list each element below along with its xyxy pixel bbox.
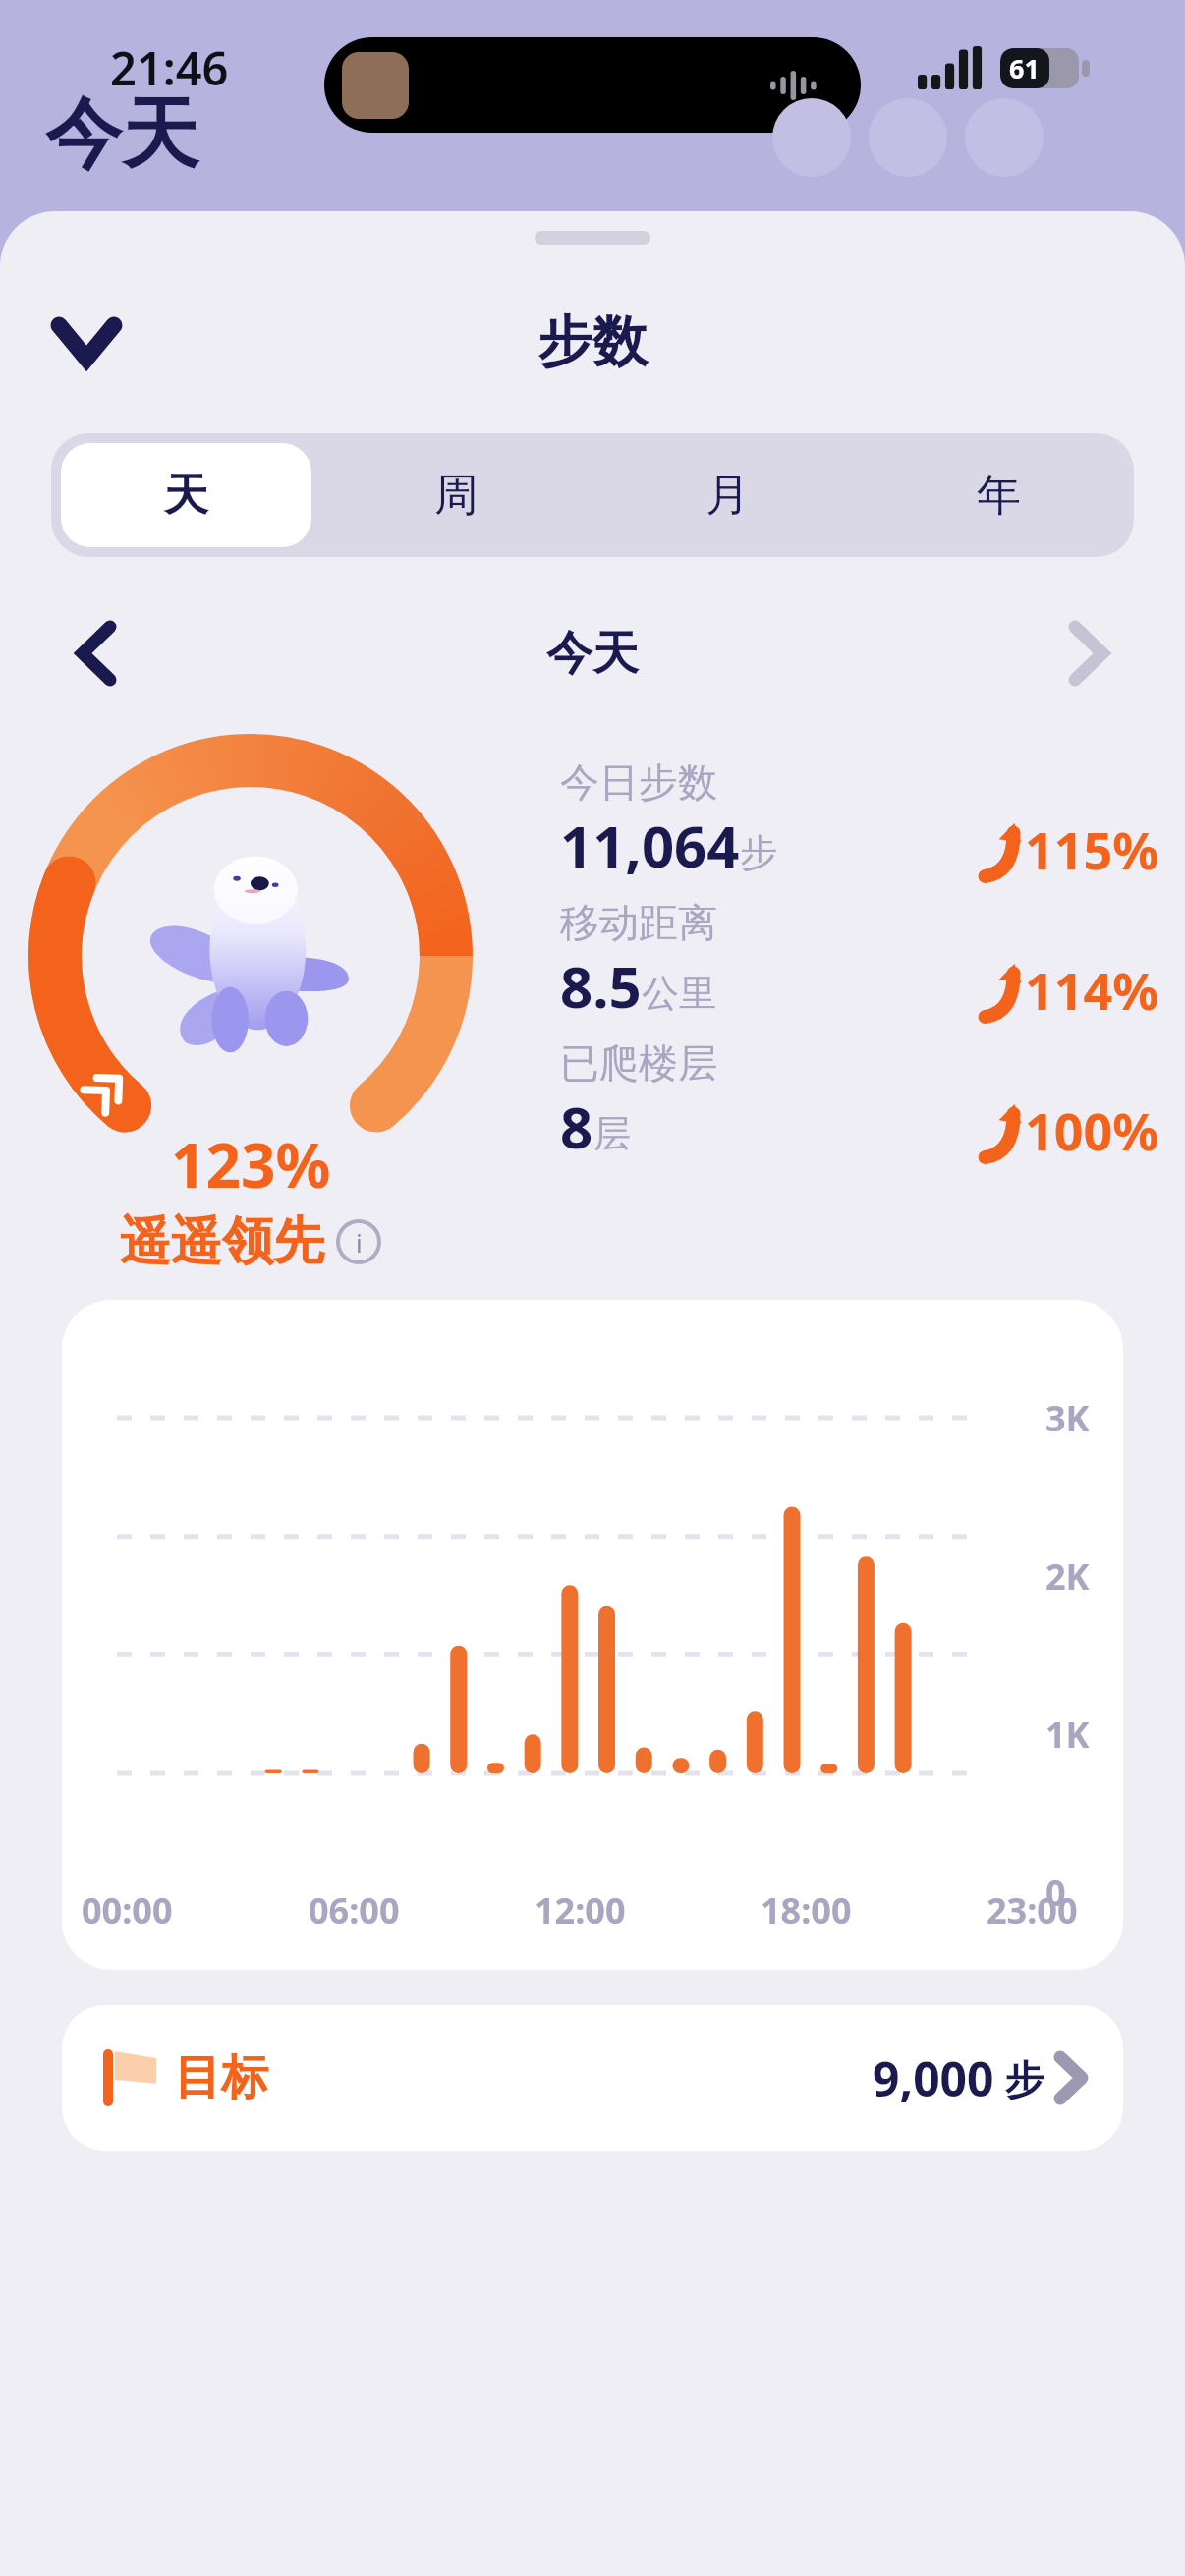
staticText: 23:00 — [987, 1886, 1078, 1934]
staticText: 今天 — [546, 625, 639, 683]
button[interactable]: Collapse — [35, 291, 138, 393]
button[interactable]: Info — [336, 1219, 381, 1264]
staticText: 11,064 — [560, 807, 740, 884]
button[interactable]: 天 — [61, 443, 311, 547]
staticText: 步 — [994, 2051, 1044, 2105]
button[interactable]: 周 — [331, 443, 582, 547]
staticText: 年 — [977, 468, 1021, 524]
button[interactable]: 目标 — [62, 2005, 1123, 2151]
staticText: 8.5 — [560, 947, 642, 1025]
staticText: 8 — [560, 1088, 593, 1165]
button[interactable]: 月 — [601, 443, 853, 547]
staticText: 18:00 — [761, 1886, 852, 1934]
staticText: 2K — [1045, 1552, 1090, 1600]
staticText: 天 — [164, 468, 208, 524]
staticText: 0 — [1045, 1869, 1066, 1917]
staticText: 100% — [1025, 1095, 1159, 1165]
staticText: 1K — [1045, 1710, 1090, 1759]
staticText: 12:00 — [535, 1886, 626, 1934]
staticText: 目标 — [174, 2048, 268, 2107]
staticText: 月 — [705, 468, 750, 524]
staticText: 周 — [434, 468, 479, 524]
button[interactable]: Previous day — [51, 608, 141, 699]
staticText: 步数 — [537, 308, 648, 377]
staticText: 公里 — [642, 970, 716, 1017]
staticText: 115% — [1025, 814, 1159, 884]
staticText: 9,000 — [873, 2046, 994, 2110]
staticText: 今日步数 — [560, 757, 717, 807]
staticText: 21:46 — [110, 36, 229, 99]
staticText: 3K — [1045, 1394, 1090, 1442]
button[interactable]: 3K — [62, 1300, 1123, 1970]
button[interactable]: Next day — [1044, 608, 1134, 699]
staticText: 已爬楼层 — [560, 1038, 717, 1088]
staticText: 步 — [740, 829, 777, 876]
staticText: 今天 — [45, 86, 198, 183]
staticText: 层 — [593, 1110, 631, 1157]
staticText: 114% — [1025, 955, 1159, 1025]
staticText: 00:00 — [82, 1886, 173, 1934]
staticText: 遥遥领先 — [120, 1209, 324, 1274]
staticText: 06:00 — [309, 1886, 400, 1934]
staticText: 移动距离 — [560, 898, 717, 947]
staticText: i — [356, 1225, 363, 1260]
staticText: 123% — [171, 1123, 331, 1205]
button[interactable]: 年 — [873, 443, 1124, 547]
staticText: 61 — [1009, 50, 1040, 86]
